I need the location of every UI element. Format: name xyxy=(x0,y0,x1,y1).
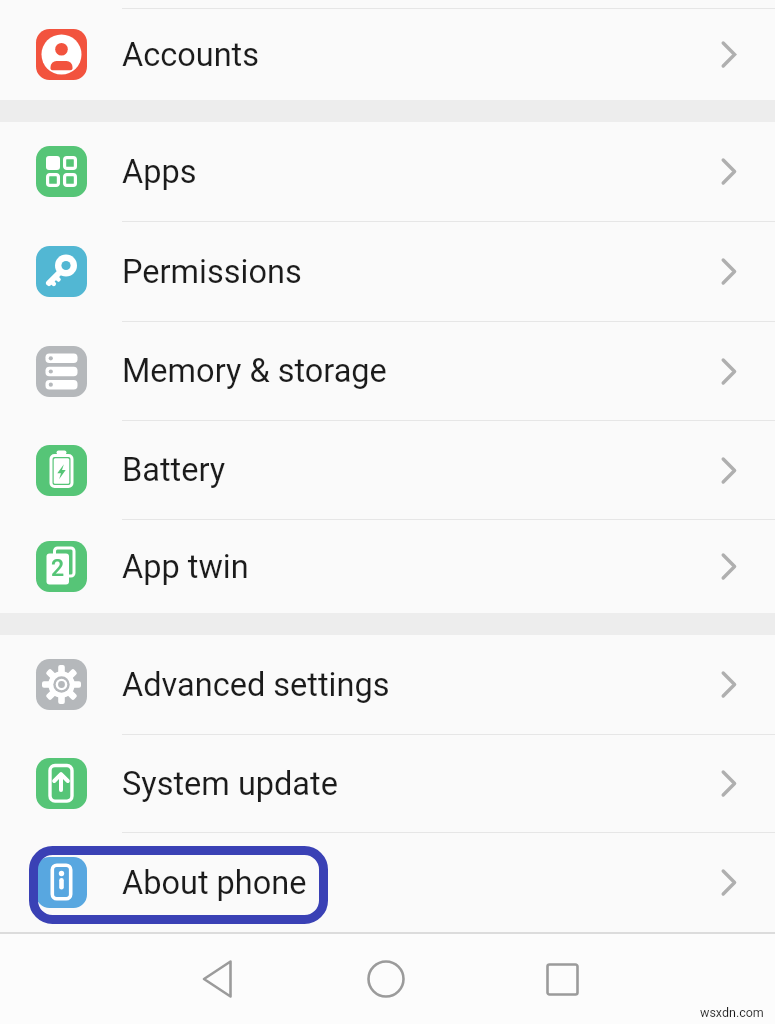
staticText: Battery xyxy=(122,451,226,489)
button[interactable]: About phone xyxy=(0,833,775,932)
button[interactable] xyxy=(185,947,249,1011)
staticText: About phone xyxy=(122,864,307,902)
staticText: App twin xyxy=(122,548,249,586)
staticText: Advanced settings xyxy=(122,666,390,704)
button[interactable]: Permissions xyxy=(0,222,775,321)
button[interactable]: System update xyxy=(0,735,775,832)
button[interactable] xyxy=(530,947,594,1011)
staticText: Permissions xyxy=(122,253,302,291)
button[interactable]: Battery xyxy=(0,421,775,519)
staticText: System update xyxy=(122,765,338,803)
button[interactable]: Advanced settings xyxy=(0,635,775,734)
button[interactable] xyxy=(354,947,418,1011)
button[interactable]: Apps xyxy=(0,122,775,221)
staticText: 2 xyxy=(51,555,65,582)
staticText: wsxdn.com xyxy=(700,1005,764,1020)
button[interactable]: 2 xyxy=(0,520,775,613)
button[interactable]: Accounts xyxy=(0,9,775,100)
staticText: Accounts xyxy=(122,36,260,74)
staticText: Memory & storage xyxy=(122,352,387,390)
button[interactable]: Memory & storage xyxy=(0,322,775,420)
staticText: Apps xyxy=(122,153,197,191)
